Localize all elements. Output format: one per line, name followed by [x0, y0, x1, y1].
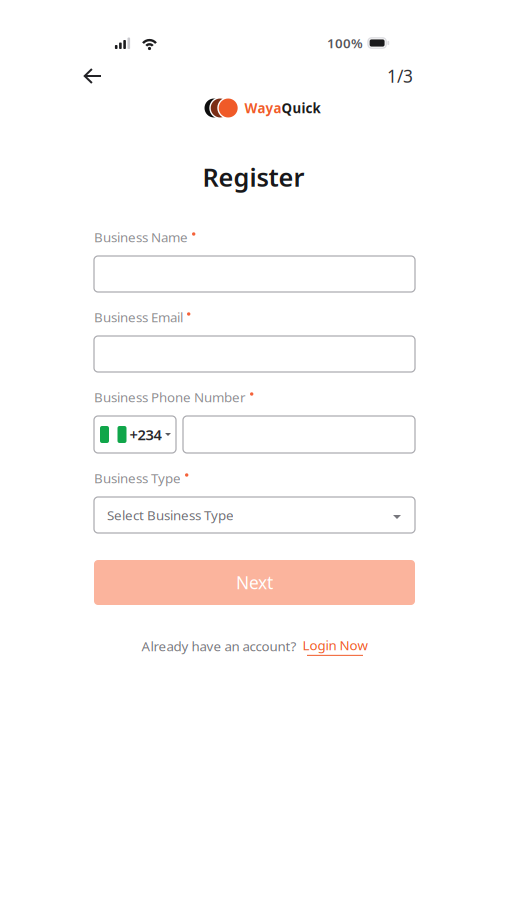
staticText: Already have an account? — [141, 637, 296, 655]
staticText: Quick — [281, 99, 320, 117]
button[interactable]: Business Name — [94, 256, 415, 292]
button[interactable]: Select Business Type — [94, 497, 415, 533]
staticText: Select Business Type — [107, 506, 234, 524]
staticText: Next — [236, 571, 273, 594]
staticText: Register — [202, 160, 304, 194]
staticText: Business Type — [94, 469, 181, 487]
button[interactable]: +234 — [94, 416, 176, 453]
staticText: 100% — [327, 34, 363, 52]
staticText: Business Email — [94, 308, 183, 326]
staticText: Login Now — [302, 636, 367, 654]
staticText: 1/3 — [387, 64, 413, 87]
button[interactable]: Login Now — [302, 636, 367, 656]
staticText: Business Name — [94, 228, 188, 246]
staticText: +234 — [129, 425, 161, 444]
staticText: Waya — [244, 99, 281, 117]
button[interactable]: Business Email — [94, 336, 415, 372]
staticText: Business Phone Number — [94, 388, 246, 406]
button[interactable]: Back — [75, 60, 111, 92]
button[interactable]: Business Phone Number — [183, 416, 415, 453]
button[interactable]: Next — [94, 560, 415, 605]
